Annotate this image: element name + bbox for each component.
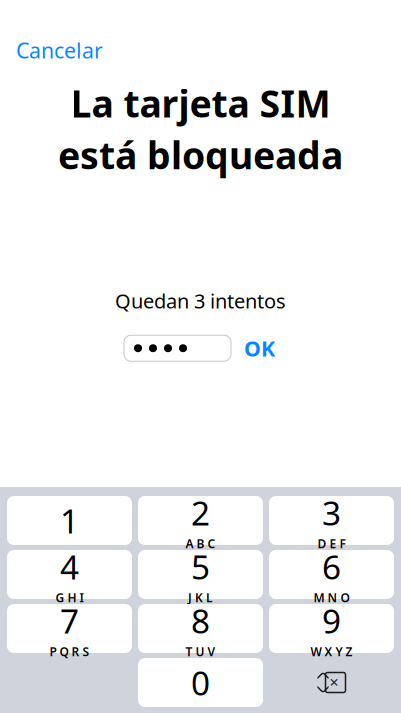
staticText: D E F xyxy=(317,536,345,552)
button[interactable]: 4 xyxy=(7,550,132,599)
staticText: 8 xyxy=(191,598,210,643)
button[interactable]: 5 xyxy=(138,550,263,599)
button[interactable]: OK xyxy=(242,330,277,366)
staticText: 7 xyxy=(60,598,79,643)
staticText: 6 xyxy=(322,544,341,589)
button[interactable]: 3 xyxy=(269,496,394,545)
button[interactable]: 9 xyxy=(269,604,394,653)
staticText: 5 xyxy=(191,544,210,589)
staticText: 4 xyxy=(60,544,79,589)
button[interactable]: 2 xyxy=(138,496,263,545)
button[interactable]: 7 xyxy=(7,604,132,653)
staticText: 3 xyxy=(322,490,341,535)
staticText: ✕ xyxy=(329,676,339,689)
staticText: G H I xyxy=(55,590,83,606)
button[interactable]: 0 xyxy=(138,658,263,707)
staticText: A B C xyxy=(185,536,215,552)
staticText: Cancelar xyxy=(16,36,103,64)
staticText: 2 xyxy=(191,490,210,535)
staticText: 0 xyxy=(191,660,210,705)
button[interactable]: 8 xyxy=(138,604,263,653)
staticText: está bloqueada xyxy=(58,130,343,179)
button[interactable]: Borrar xyxy=(269,658,394,707)
button[interactable]: 1 xyxy=(7,496,132,545)
staticText: 9 xyxy=(322,598,341,643)
staticText: M N O xyxy=(313,590,349,606)
staticText: T U V xyxy=(185,644,215,660)
staticText: OK xyxy=(244,334,275,362)
staticText: La tarjeta SIM xyxy=(70,78,330,128)
button[interactable]: 6 xyxy=(269,550,394,599)
staticText: W X Y Z xyxy=(310,644,352,660)
button[interactable]: Cancelar xyxy=(0,30,119,70)
staticText: P Q R S xyxy=(49,644,89,660)
staticText: 1 xyxy=(60,498,79,543)
staticText: Quedan 3 intentos xyxy=(115,287,286,314)
staticText: J K L xyxy=(188,590,213,606)
